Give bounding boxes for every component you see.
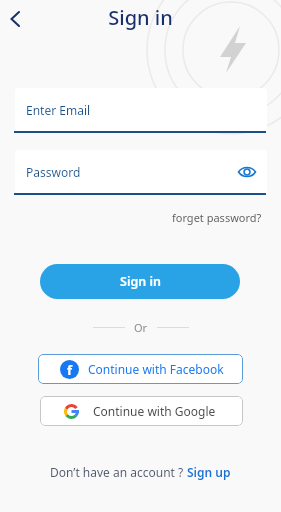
staticText: Continue with Google <box>93 403 216 419</box>
button[interactable]: forget password? <box>166 209 262 225</box>
staticText: Sign in <box>0 4 281 31</box>
button[interactable]: f <box>38 354 243 384</box>
staticText: Or <box>134 320 148 334</box>
button[interactable]: Continue with Google <box>40 396 243 426</box>
staticText: Sign up <box>187 464 231 480</box>
staticText: forget password? <box>172 210 262 225</box>
staticText: Don’t have an account ? <box>50 464 187 480</box>
button[interactable] <box>236 161 258 183</box>
button[interactable]: Enter Email <box>15 88 267 132</box>
staticText: Enter Email <box>26 102 91 118</box>
staticText: f <box>67 361 73 379</box>
button[interactable]: Sign in <box>40 264 240 299</box>
staticText: Password <box>26 164 81 180</box>
staticText: Sign in <box>120 273 161 290</box>
staticText: Continue with Facebook <box>88 361 224 377</box>
button[interactable] <box>2 8 32 38</box>
button[interactable]: Don’t have an account ? <box>0 464 281 480</box>
button[interactable]: Password <box>15 150 267 194</box>
